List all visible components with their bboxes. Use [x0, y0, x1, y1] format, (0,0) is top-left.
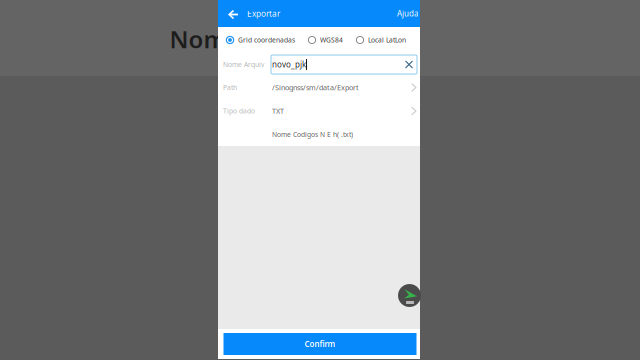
staticText: TXT — [272, 106, 284, 116]
staticText: Tipo dado — [223, 106, 255, 116]
staticText: Exportar — [247, 8, 280, 19]
button[interactable]: Clear file name — [401, 54, 417, 74]
button[interactable]: Confirm — [222, 333, 415, 355]
staticText: Local LatLon — [368, 35, 406, 45]
staticText: Confirm — [304, 339, 335, 349]
button[interactable]: Ajuda — [389, 0, 420, 27]
staticText: WGS84 — [320, 35, 343, 45]
staticText: Path — [223, 83, 237, 92]
staticText: Nome Arquiv — [223, 60, 264, 69]
staticText: Grid coordenadas — [238, 35, 295, 45]
staticText: novo_pjk — [272, 59, 306, 70]
staticText: Nome Codigos N E h( .txt) — [272, 130, 353, 139]
button[interactable]: Local LatLon — [356, 29, 406, 51]
button[interactable]: WGS84 — [308, 29, 343, 51]
staticText: /Sinognss/sm/data/Export — [272, 83, 359, 92]
button[interactable]: Tipo dado — [218, 99, 420, 123]
staticText: Nome — [169, 23, 240, 55]
button[interactable]: Back — [218, 0, 247, 27]
button[interactable]: Path — [218, 76, 420, 99]
button[interactable]: Grid coordenadas — [226, 29, 295, 51]
staticText: Ajuda — [397, 8, 418, 19]
